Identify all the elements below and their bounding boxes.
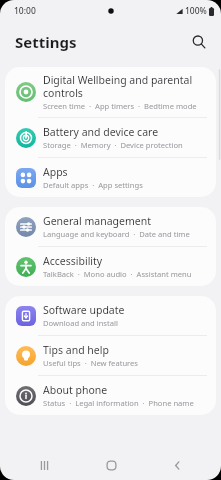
staticText: Status · Legal information · Phone name — [43, 398, 194, 408]
button[interactable]: General management — [5, 207, 216, 246]
staticText: Screen time · App timers · Bedtime mode — [43, 101, 197, 111]
staticText: 100% — [185, 5, 207, 17]
staticText: Battery and device care — [43, 125, 159, 139]
staticText: TalkBack · Mono audio · Assistant menu — [43, 269, 192, 279]
staticText: Apps — [43, 165, 68, 179]
button[interactable]: Digital Wellbeing and parental controls — [5, 67, 216, 117]
button[interactable]: Accessibility — [5, 247, 216, 286]
staticText: Language and keyboard · Date and time — [43, 229, 190, 239]
staticText: Digital Wellbeing and parental controls — [43, 73, 193, 100]
staticText: Download and install — [43, 318, 118, 328]
button[interactable]: Search settings — [186, 29, 212, 55]
staticText: Software update — [43, 303, 125, 317]
button[interactable]: Back — [155, 450, 199, 480]
staticText: Accessibility — [43, 254, 103, 268]
button[interactable]: Home — [89, 450, 133, 480]
staticText: About phone — [43, 383, 108, 397]
staticText: 10:00 — [14, 5, 36, 17]
button[interactable]: About phone — [5, 376, 216, 415]
button[interactable]: Software update — [5, 296, 216, 335]
staticText: Storage · Memory · Device protection — [43, 140, 183, 150]
button[interactable]: Recent apps — [22, 450, 66, 480]
button[interactable]: Apps — [5, 158, 216, 197]
staticText: Tips and help — [43, 343, 109, 357]
staticText: Default apps · App settings — [43, 180, 143, 190]
staticText: Useful tips · New features — [43, 358, 138, 368]
staticText: Settings — [15, 32, 77, 52]
button[interactable]: Battery and device care — [5, 118, 216, 157]
staticText: General management — [43, 214, 151, 228]
button[interactable]: Tips and help — [5, 336, 216, 375]
